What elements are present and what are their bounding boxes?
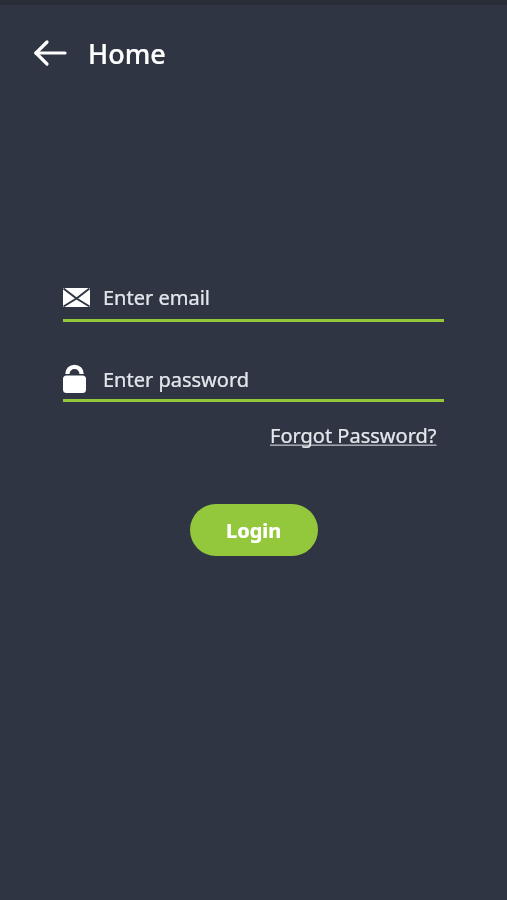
staticText: Enter email: [103, 284, 210, 311]
staticText: Enter password: [103, 366, 250, 393]
button[interactable]: Forgot Password?: [270, 422, 437, 449]
staticText: Home: [88, 35, 166, 72]
button[interactable]: [28, 30, 74, 76]
staticText: Login: [226, 517, 282, 544]
button[interactable]: Enter password: [63, 359, 444, 399]
button[interactable]: Enter email: [63, 277, 444, 317]
button[interactable]: Login: [190, 504, 318, 556]
